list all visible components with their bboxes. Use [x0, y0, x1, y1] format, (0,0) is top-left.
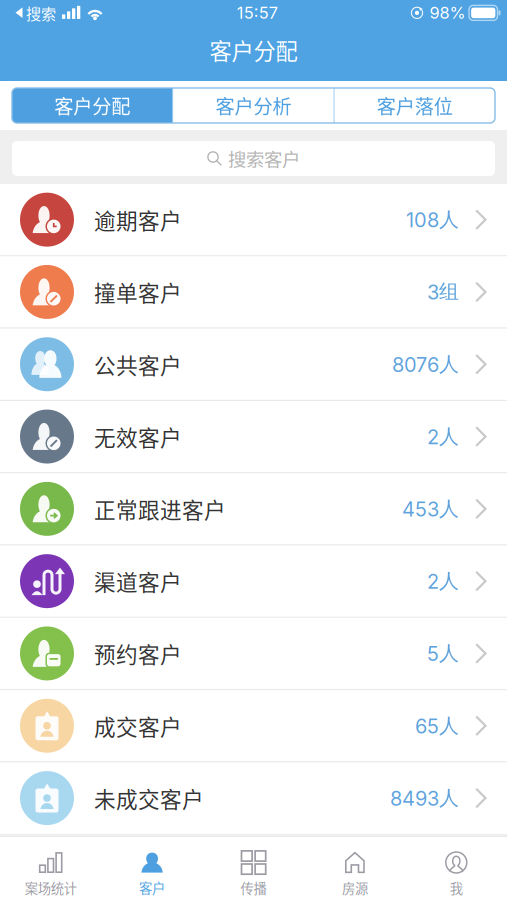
staticText: 15:57	[237, 3, 278, 23]
button[interactable]: 客户	[101, 837, 203, 900]
staticText: 2人	[427, 569, 459, 594]
button[interactable]: 渠道客户	[0, 545, 507, 617]
staticText: 98%	[429, 3, 465, 23]
button[interactable]: 撞单客户	[0, 256, 507, 328]
staticText: 预约客户	[94, 638, 182, 669]
staticText: 撞单客户	[94, 276, 182, 308]
staticText: 无效客户	[94, 421, 182, 452]
staticText: 搜索	[26, 2, 56, 24]
staticText: 搜索客户	[228, 145, 300, 172]
staticText: 8493人	[390, 785, 459, 811]
staticText: 客户分配	[54, 92, 130, 119]
staticText: 客户	[139, 878, 165, 897]
staticText: 3组	[427, 279, 459, 305]
staticText: 公共客户	[94, 349, 182, 380]
staticText: 成交客户	[94, 710, 182, 741]
button[interactable]: 我	[406, 837, 507, 900]
button[interactable]: 客户落位	[335, 88, 495, 123]
staticText: 453人	[402, 496, 459, 521]
button[interactable]: 客户分析	[173, 88, 334, 123]
staticText: 65人	[415, 713, 459, 738]
staticText: 我	[450, 878, 463, 897]
staticText: 渠道客户	[94, 565, 182, 597]
button[interactable]: 正常跟进客户	[0, 473, 507, 544]
staticText: 108人	[406, 207, 459, 232]
button[interactable]: 无效客户	[0, 401, 507, 472]
staticText: 案场统计	[25, 878, 77, 897]
staticText: 8076人	[392, 352, 459, 377]
staticText: 5人	[427, 641, 459, 666]
button[interactable]: 预约客户	[0, 618, 507, 689]
staticText: 房源	[342, 878, 368, 897]
button[interactable]: 案场统计	[0, 837, 101, 900]
staticText: 逾期客户	[94, 204, 182, 235]
button[interactable]: 传播	[203, 837, 304, 900]
staticText: 2人	[427, 424, 459, 449]
staticText: 传播	[240, 878, 266, 897]
staticText: 客户分配	[209, 34, 297, 66]
button[interactable]: 逾期客户	[0, 184, 507, 255]
staticText: 客户分析	[215, 92, 291, 119]
staticText: 未成交客户	[94, 782, 204, 814]
button[interactable]: 成交客户	[0, 690, 507, 761]
button[interactable]: 未成交客户	[0, 762, 507, 834]
button[interactable]: 房源	[304, 837, 406, 900]
staticText: 客户落位	[377, 92, 453, 119]
button[interactable]: 客户分配	[12, 88, 172, 123]
button[interactable]: 公共客户	[0, 329, 507, 400]
staticText: 正常跟进客户	[94, 493, 226, 524]
